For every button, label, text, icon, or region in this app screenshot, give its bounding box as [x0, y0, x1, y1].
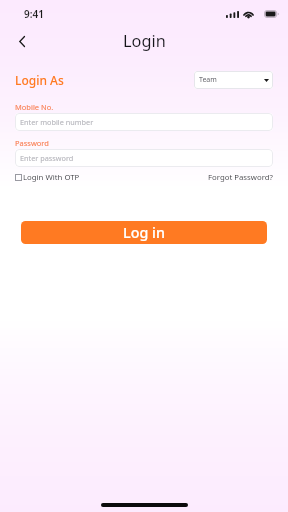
staticText: 9:41: [24, 7, 44, 21]
staticText: Login: [123, 30, 166, 52]
staticText: Password: [15, 138, 49, 148]
staticText: Enter mobile number: [20, 117, 94, 127]
staticText: Login With OTP: [23, 172, 80, 183]
staticText: Team: [199, 75, 217, 85]
staticText: Login As: [15, 72, 64, 88]
button[interactable]: Team: [194, 71, 273, 89]
button[interactable]: Enter password: [15, 149, 273, 167]
button[interactable]: Back: [10, 30, 34, 54]
staticText: Enter password: [20, 153, 74, 163]
button[interactable]: Forgot Password?: [208, 172, 273, 183]
button[interactable]: Enter mobile number: [15, 113, 273, 131]
button[interactable]: Login With OTP: [15, 172, 80, 183]
button[interactable]: Log in: [21, 221, 267, 244]
staticText: Mobile No.: [15, 102, 54, 112]
staticText: Log in: [123, 223, 165, 242]
